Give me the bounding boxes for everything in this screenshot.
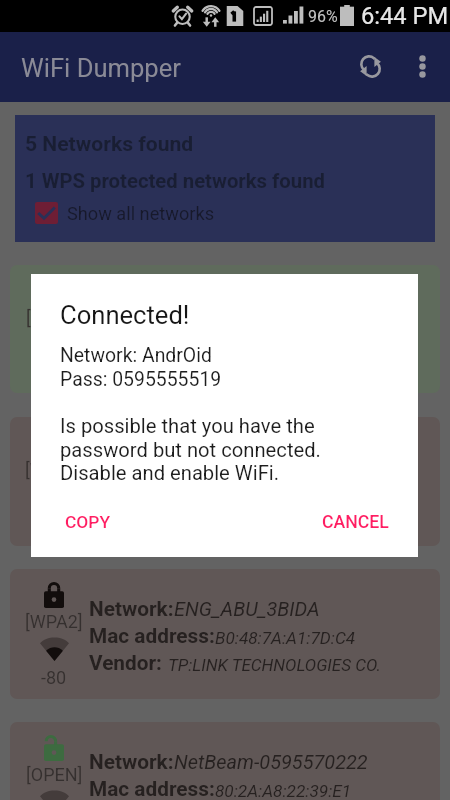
staticText: -55: [41, 515, 67, 536]
button[interactable]: More options: [401, 45, 443, 87]
staticText: WiFi-Hotspot: [174, 294, 286, 317]
button[interactable]: [WPA2]: [10, 417, 440, 546]
staticText: [WPA2]: [25, 459, 83, 480]
staticText: NetBeam-0595570222: [174, 751, 368, 774]
staticText: C8:3A:35:4E:12:9B: [215, 476, 353, 496]
staticText: Network:: [89, 445, 174, 469]
staticText: 5 Networks found: [25, 131, 194, 156]
staticText: ENG_ABU_3BIDA: [174, 598, 320, 621]
staticText: Network:: [89, 750, 174, 774]
staticText: Network:: [89, 293, 174, 317]
staticText: B0:48:7A:A1:7D:C4: [215, 628, 356, 648]
staticText: 80:2A:A8:22:39:E1: [215, 781, 352, 800]
staticText: Mac address:: [89, 777, 215, 800]
staticText: -62: [41, 363, 67, 384]
staticText: WiFi Dumpper: [21, 53, 181, 83]
staticText: Vendor:: [89, 499, 168, 523]
staticText: [OPEN]: [26, 764, 83, 785]
button[interactable]: [WPA2]: [10, 569, 440, 699]
staticText: Network: AndrOid Pass: 0595555519: [60, 344, 222, 391]
button[interactable]: COPY: [51, 503, 125, 541]
staticText: COPY: [65, 512, 111, 532]
staticText: Connected!: [60, 300, 190, 330]
staticText: [OPEN]: [26, 307, 83, 328]
staticText: Mac address:: [89, 624, 215, 648]
staticText: Vendor:: [89, 651, 168, 675]
staticText: TENDA TECHNOLOGY CO.: [168, 503, 360, 523]
staticText: 6:44 PM: [361, 2, 449, 30]
button[interactable]: Show all networks: [35, 202, 215, 224]
staticText: 1 WPS protected networks found: [25, 169, 325, 193]
staticText: Mac address:: [89, 320, 215, 344]
staticText: -80: [41, 667, 67, 688]
staticText: TP:LINK TECHNOLOGIES CO.: [168, 655, 381, 675]
staticText: SAMSUNG ELECTRONICS: [168, 351, 357, 371]
button[interactable]: [OPEN]: [10, 722, 440, 800]
button[interactable]: CANCEL: [308, 503, 403, 542]
staticText: Network:: [89, 597, 174, 621]
staticText: AndrOid: [174, 446, 244, 469]
staticText: Vendor:: [89, 347, 168, 371]
staticText: 96%: [308, 7, 338, 26]
staticText: CANCEL: [322, 512, 389, 533]
button[interactable]: Refresh: [346, 42, 394, 90]
staticText: Show all networks: [67, 203, 215, 224]
staticText: Mac address:: [89, 472, 215, 496]
staticText: Is possible that you have the password b…: [60, 414, 321, 485]
button[interactable]: [OPEN]: [10, 265, 440, 393]
staticText: [WPA2]: [25, 611, 83, 632]
